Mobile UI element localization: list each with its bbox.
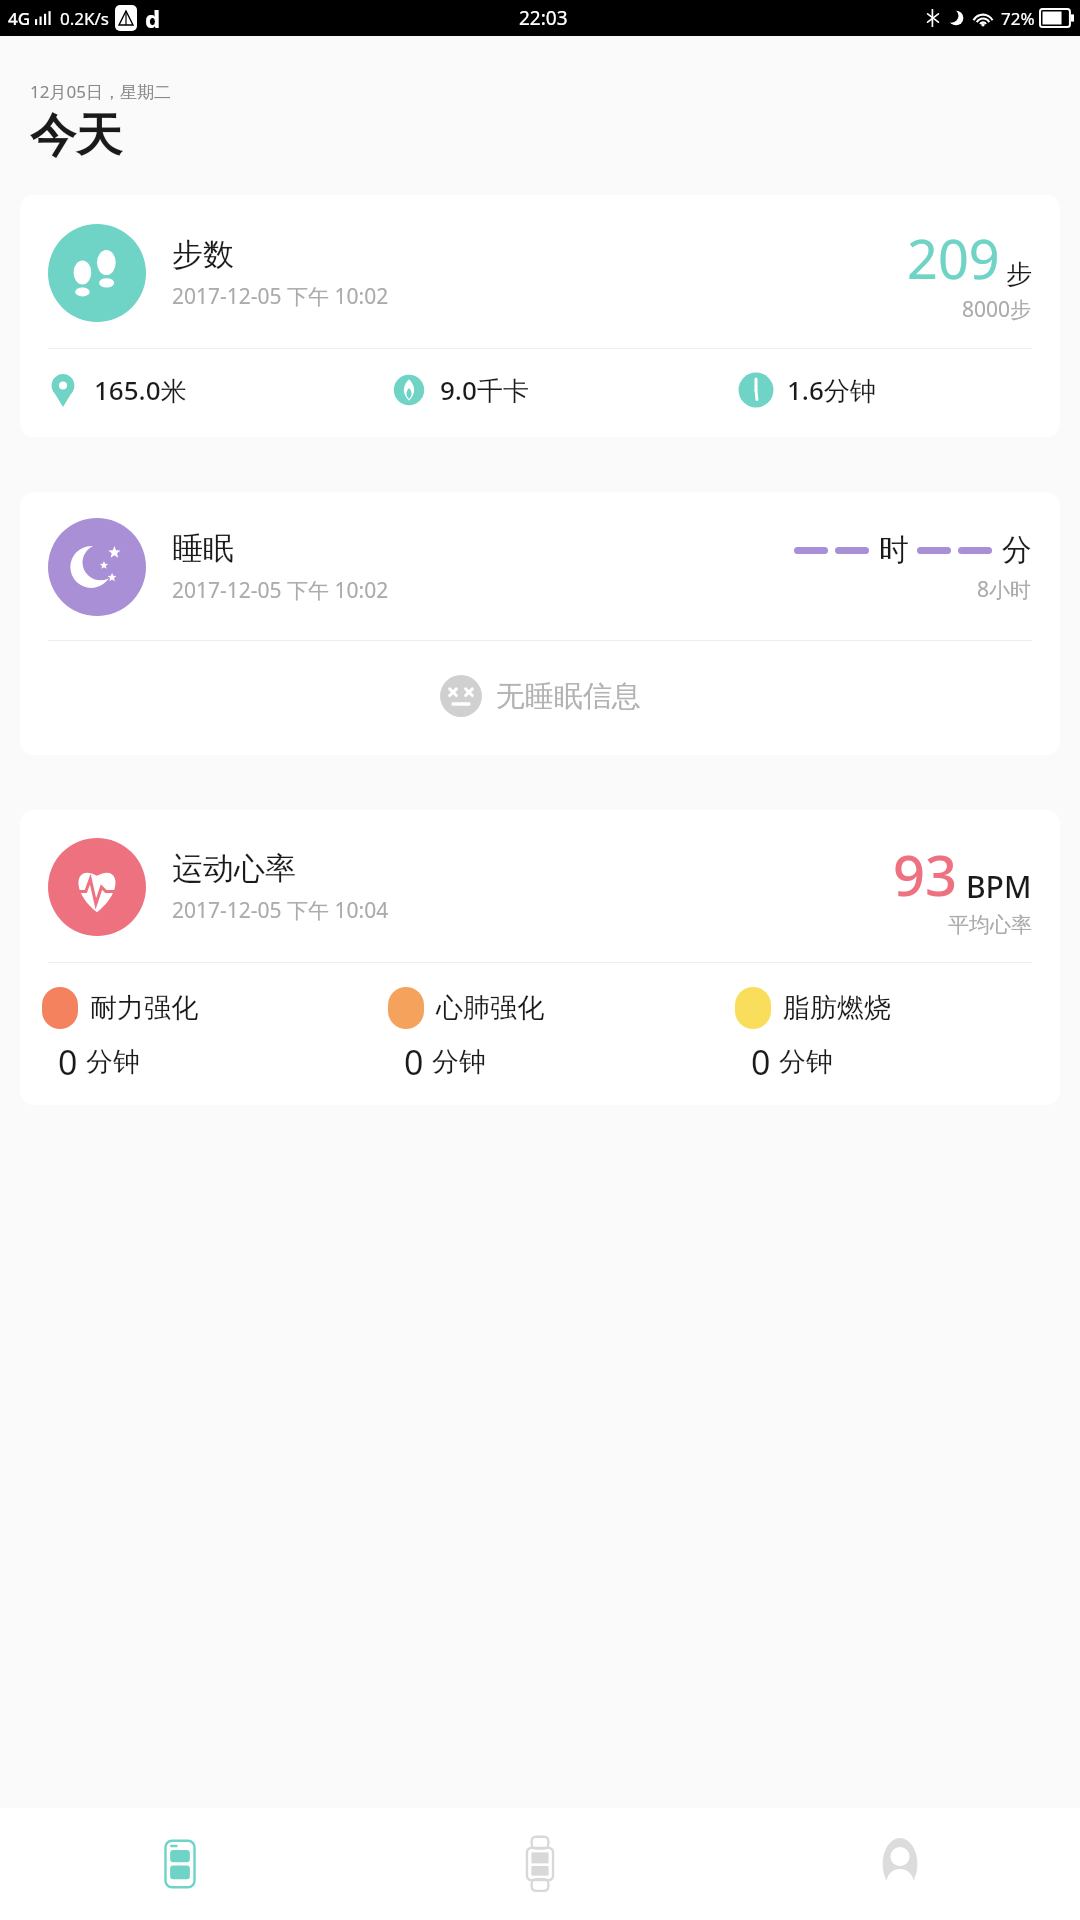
button[interactable]: 165.0米 <box>44 371 366 409</box>
staticText: 9.0千卡 <box>440 372 529 408</box>
staticText: 脂肪燃烧 <box>783 991 891 1025</box>
staticText: 0.2K/s <box>60 7 109 30</box>
button[interactable]: 耐力强化 <box>42 987 366 1029</box>
button[interactable]: 运动心率 <box>20 810 1060 1105</box>
button[interactable]: Profile <box>720 1808 1080 1920</box>
button[interactable]: Today <box>0 1808 360 1920</box>
button[interactable]: 1.6分钟 <box>737 371 1060 409</box>
staticText: 分钟 <box>432 1045 486 1079</box>
staticText: 时 <box>879 531 909 569</box>
staticText: BPM <box>966 866 1032 907</box>
staticText: 0 <box>404 1039 424 1085</box>
staticText: 2017-12-05 下午 10:02 <box>172 282 389 311</box>
staticText: 22:03 <box>519 5 568 31</box>
button[interactable]: Device <box>360 1808 720 1920</box>
staticText: 12月05日，星期二 <box>30 80 171 103</box>
staticText: 0 <box>58 1039 78 1085</box>
staticText: 步数 <box>172 235 234 274</box>
staticText: 心肺强化 <box>436 991 544 1025</box>
staticText: 8小时 <box>977 575 1032 604</box>
staticText: 4G <box>8 7 31 30</box>
button[interactable]: 9.0千卡 <box>390 371 713 409</box>
staticText: 209 <box>907 221 1000 295</box>
button[interactable]: 心肺强化 <box>388 987 713 1029</box>
staticText: 睡眠 <box>172 529 234 568</box>
staticText: 平均心率 <box>948 912 1032 938</box>
button[interactable]: 步数 <box>20 195 1060 437</box>
staticText: 今天 <box>30 107 122 165</box>
staticText: 分 <box>1002 531 1032 569</box>
staticText: 运动心率 <box>172 849 296 888</box>
staticText: 0 <box>751 1039 771 1085</box>
staticText: 步 <box>1006 258 1032 291</box>
staticText: 165.0米 <box>94 372 187 408</box>
staticText: 耐力强化 <box>90 991 198 1025</box>
staticText: 72% <box>1001 7 1035 30</box>
staticText: 无睡眠信息 <box>496 678 641 715</box>
button[interactable]: 睡眠 <box>20 492 1060 755</box>
staticText: 1.6分钟 <box>787 372 876 408</box>
staticText: 2017-12-05 下午 10:02 <box>172 576 389 605</box>
staticText: 分钟 <box>86 1045 140 1079</box>
staticText: 8000步 <box>962 295 1032 324</box>
button[interactable]: 脂肪燃烧 <box>735 987 1060 1029</box>
staticText: d <box>145 2 161 35</box>
staticText: 分钟 <box>779 1045 833 1079</box>
staticText: 2017-12-05 下午 10:04 <box>172 896 389 925</box>
staticText: 93 <box>893 836 958 912</box>
